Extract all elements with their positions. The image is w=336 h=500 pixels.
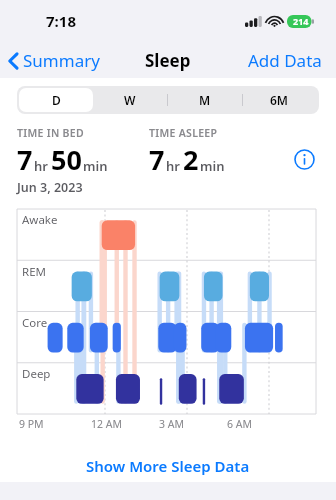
staticText: 214 xyxy=(293,15,309,27)
staticText: 6 AM xyxy=(227,417,252,431)
button[interactable]: Show More Sleep Data xyxy=(0,450,336,482)
staticText: TIME IN BED xyxy=(17,126,84,140)
staticText: 7 xyxy=(149,141,165,178)
staticText: Sleep xyxy=(145,49,191,72)
staticText: 50 xyxy=(51,141,82,178)
button[interactable]: W xyxy=(93,88,167,112)
staticText: W xyxy=(124,92,136,108)
staticText: min xyxy=(83,157,108,175)
staticText: Show More Sleep Data xyxy=(86,456,250,476)
staticText: 3 AM xyxy=(159,417,184,431)
staticText: 2 xyxy=(183,141,199,178)
staticText: D xyxy=(52,92,61,108)
button[interactable]: Summary xyxy=(0,45,106,76)
staticText: hr xyxy=(34,157,48,175)
staticText: REM xyxy=(22,264,46,280)
staticText: TIME ASLEEP xyxy=(149,126,218,140)
staticText: min xyxy=(200,157,225,175)
staticText: Deep xyxy=(22,366,51,382)
staticText: M xyxy=(199,92,211,108)
staticText: Summary xyxy=(23,49,100,72)
staticText: 9 PM xyxy=(19,417,44,431)
staticText: 7 xyxy=(17,141,33,178)
staticText: 6M xyxy=(270,92,289,108)
button[interactable]: 6M xyxy=(242,88,317,112)
button[interactable]: Add Data xyxy=(234,45,336,76)
button[interactable]: M xyxy=(167,88,242,112)
staticText: Awake xyxy=(22,212,58,228)
staticText: 7:18 xyxy=(46,11,76,31)
staticText: 12 AM xyxy=(91,417,122,431)
staticText: hr xyxy=(166,157,180,175)
button[interactable]: D xyxy=(19,88,93,112)
staticText: Jun 3, 2023 xyxy=(17,179,83,196)
staticText: Core xyxy=(22,315,48,331)
staticText: Add Data xyxy=(248,49,322,72)
button[interactable]: Info xyxy=(289,144,319,174)
